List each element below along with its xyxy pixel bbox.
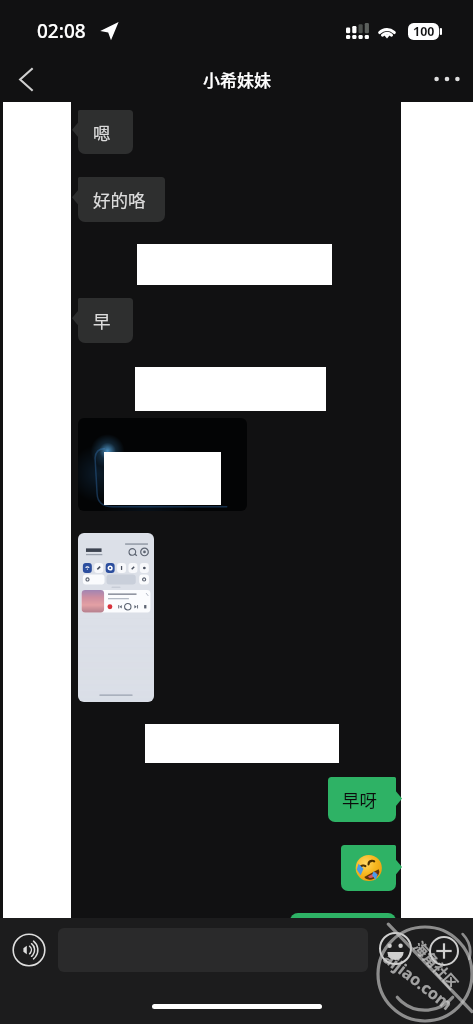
staticText: aijiao.com bbox=[379, 947, 457, 1015]
button[interactable]: 早 bbox=[72, 298, 133, 343]
staticText: 早 bbox=[93, 308, 111, 333]
staticText: 好的咯 bbox=[93, 187, 146, 212]
button[interactable]: More functions bbox=[426, 933, 462, 969]
button[interactable]: Back bbox=[2, 56, 50, 102]
button[interactable]: 嗯 bbox=[72, 110, 133, 154]
button[interactable]: More options bbox=[421, 56, 473, 102]
staticText: 早呀 bbox=[342, 787, 377, 812]
staticText: 嗯 bbox=[93, 120, 111, 145]
button[interactable] bbox=[341, 845, 402, 891]
staticText: 海角社区 bbox=[409, 936, 464, 993]
button[interactable] bbox=[78, 533, 154, 702]
staticText: 100 bbox=[413, 23, 435, 40]
button[interactable]: Emoji bbox=[377, 930, 414, 967]
button[interactable] bbox=[78, 418, 247, 511]
button[interactable]: 好的咯 bbox=[72, 177, 165, 222]
staticText: 小希妹妹 bbox=[203, 67, 271, 92]
staticText: 02:08 bbox=[37, 18, 86, 44]
button[interactable]: 早呀 bbox=[328, 777, 402, 822]
button[interactable]: Voice input bbox=[12, 933, 46, 967]
